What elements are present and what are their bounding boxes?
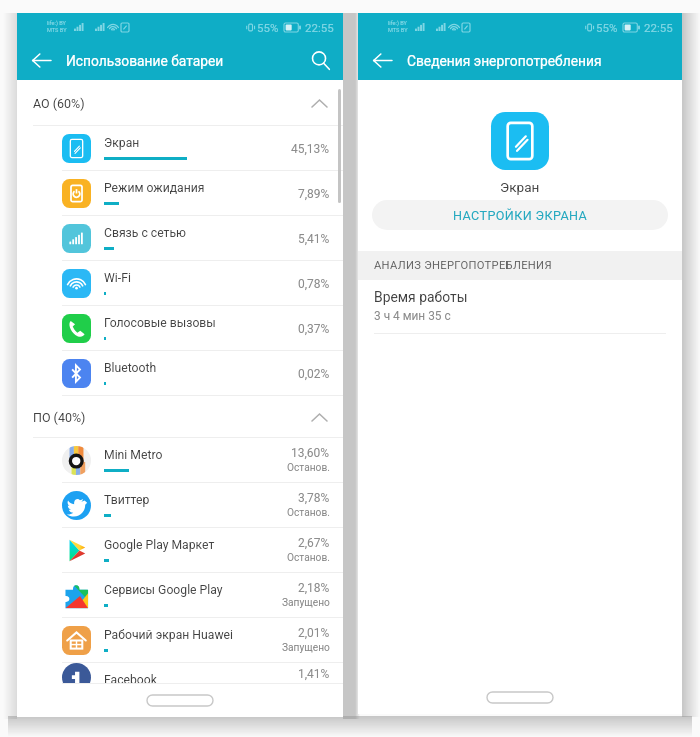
staticText: Запущено xyxy=(282,642,330,654)
staticText: 22:55 xyxy=(644,21,673,34)
staticText: Голосовые вызовы xyxy=(104,316,216,330)
staticText: Bluetooth xyxy=(104,361,157,375)
staticText: Mini Metro xyxy=(104,448,163,462)
staticText: 22:55 xyxy=(305,21,334,34)
staticText: Экран xyxy=(500,179,540,195)
staticText: 2,18% xyxy=(298,581,330,595)
staticText: 2,01% xyxy=(298,626,330,640)
staticText: Экран xyxy=(104,136,140,150)
staticText: Google Play Маркет xyxy=(104,538,215,552)
staticText: Сервисы Google Play xyxy=(104,583,223,597)
staticText: ПО (40%) xyxy=(33,410,86,425)
staticText: АНАЛИЗ ЭНЕРГОПОТРЕБЛЕНИЯ xyxy=(374,259,552,272)
button[interactable]: Search xyxy=(297,41,343,80)
staticText: 7,89% xyxy=(298,187,330,201)
button[interactable]: Bluetooth xyxy=(17,351,343,396)
staticText: 55% xyxy=(596,21,618,34)
staticText: 0,78% xyxy=(298,277,330,291)
staticText: 3 ч 4 мин 35 с xyxy=(374,309,451,323)
button[interactable]: Экран xyxy=(17,126,343,171)
staticText: 1,41% xyxy=(298,667,330,681)
staticText: Рабочий экран Huawei xyxy=(104,628,233,642)
button[interactable]: Рабочий экран Huawei xyxy=(17,618,343,663)
staticText: 55% xyxy=(257,21,279,34)
button[interactable]: Сервисы Google Play xyxy=(17,573,343,618)
button[interactable]: Google Play Маркет xyxy=(17,528,343,573)
staticText: life:) BY xyxy=(47,20,66,27)
staticText: 3,78% xyxy=(298,491,330,505)
staticText: 13,60% xyxy=(291,446,330,460)
staticText: 5,41% xyxy=(298,232,330,246)
button[interactable]: НАСТРОЙКИ ЭКРАНА xyxy=(372,200,668,230)
staticText: Останов. xyxy=(287,462,330,474)
button[interactable]: Mini Metro xyxy=(17,438,343,483)
staticText: Wi-Fi xyxy=(104,271,131,285)
button[interactable]: АО (60%) xyxy=(17,80,343,126)
button[interactable]: Связь с сетью xyxy=(17,216,343,261)
staticText: 45,13% xyxy=(291,142,330,156)
staticText: MTS BY xyxy=(47,27,67,34)
staticText: 0,37% xyxy=(298,322,330,336)
button[interactable]: Голосовые вызовы xyxy=(17,306,343,351)
staticText: Facebook xyxy=(104,673,157,687)
staticText: 0,02% xyxy=(298,367,330,381)
button[interactable]: Back xyxy=(17,41,66,80)
button[interactable]: Твиттер xyxy=(17,483,343,528)
button[interactable]: Режим ожидания xyxy=(17,171,343,216)
staticText: Запущено xyxy=(282,597,330,609)
button[interactable]: Wi-Fi xyxy=(17,261,343,306)
staticText: Режим ожидания xyxy=(104,181,205,195)
button[interactable]: Facebook xyxy=(17,663,343,684)
staticText: Сведения энергопотребления xyxy=(407,53,602,69)
staticText: 2,67% xyxy=(298,536,330,550)
staticText: MTS BY xyxy=(388,27,408,34)
staticText: Связь с сетью xyxy=(104,226,187,240)
button[interactable]: ПО (40%) xyxy=(17,396,343,438)
staticText: life:) BY xyxy=(388,20,407,27)
staticText: Время работы xyxy=(374,289,468,305)
staticText: Останов. xyxy=(287,507,330,519)
staticText: Использование батареи xyxy=(66,53,224,69)
staticText: АО (60%) xyxy=(33,96,85,111)
button[interactable]: Back xyxy=(358,41,407,80)
staticText: НАСТРОЙКИ ЭКРАНА xyxy=(453,208,588,223)
staticText: Останов. xyxy=(287,552,330,564)
staticText: Твиттер xyxy=(104,493,150,507)
